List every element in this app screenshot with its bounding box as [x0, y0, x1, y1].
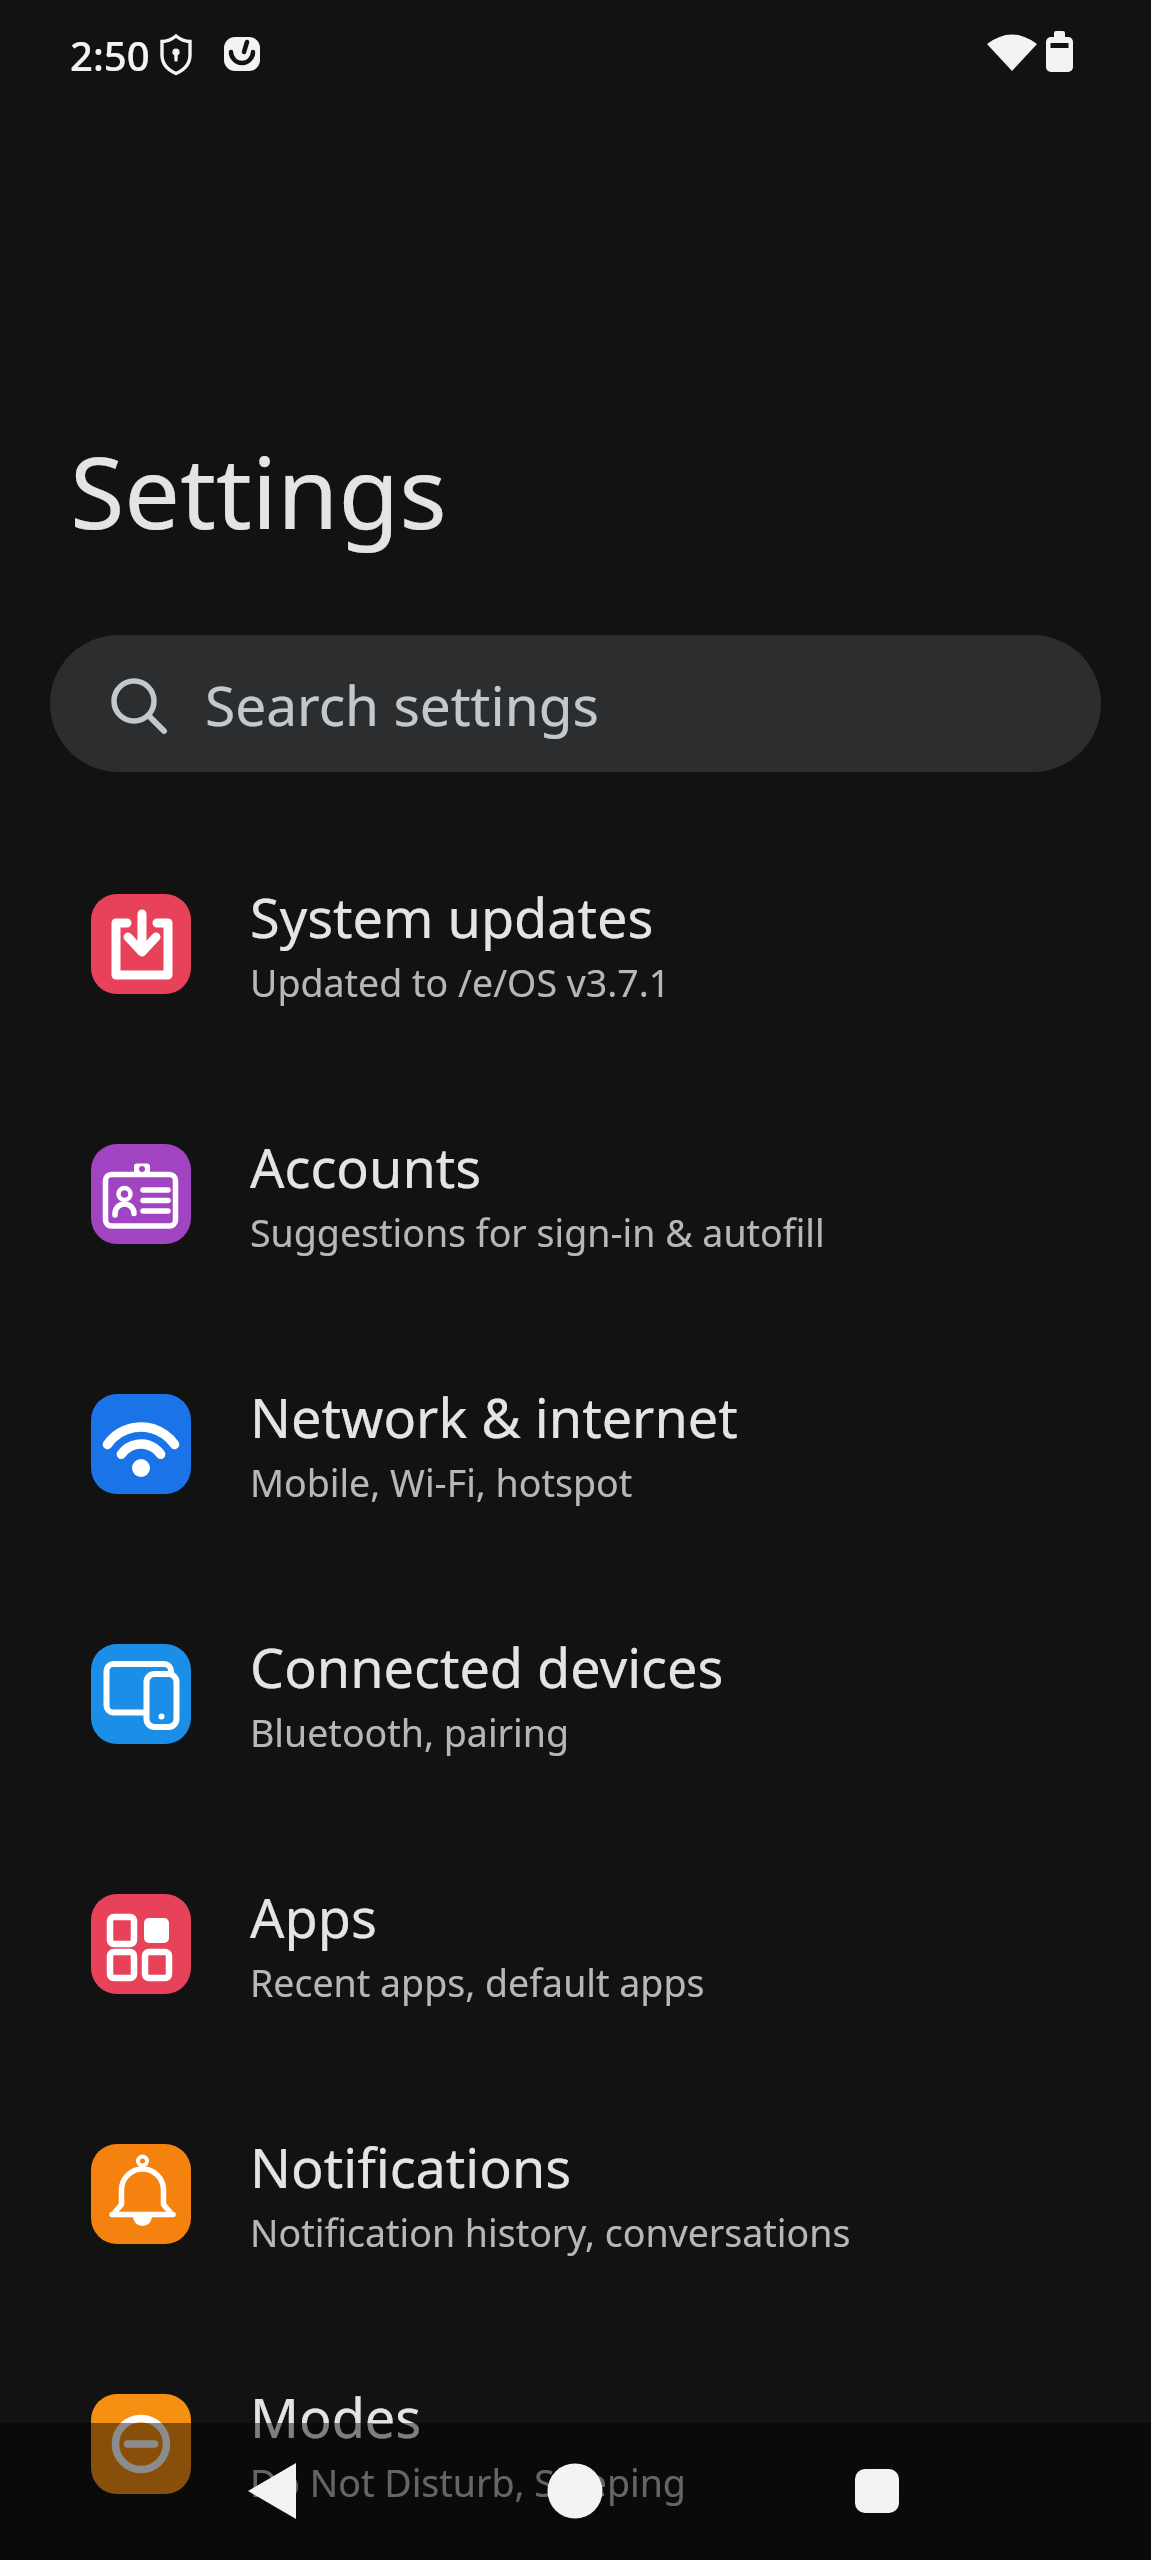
- staticText: Connected devices: [250, 1630, 724, 1704]
- staticText: Notifications: [250, 2130, 572, 2204]
- staticText: Network & internet: [250, 1380, 738, 1454]
- staticText: Mobile, Wi-Fi, hotspot: [250, 1457, 633, 1508]
- button[interactable]: Apps: [0, 1819, 1151, 2069]
- staticText: Modes: [250, 2380, 422, 2454]
- staticText: Suggestions for sign-in & autofill: [250, 1207, 825, 1258]
- staticText: Apps: [250, 1880, 377, 1954]
- button[interactable]: Network & internet: [0, 1319, 1151, 1569]
- button[interactable]: Accounts: [0, 1069, 1151, 1319]
- button[interactable]: Modes: [0, 2319, 1151, 2560]
- button[interactable]: Connected devices: [0, 1569, 1151, 1819]
- button[interactable]: Notifications: [0, 2069, 1151, 2319]
- button[interactable]: [525, 2441, 625, 2541]
- staticText: Settings: [70, 423, 447, 558]
- staticText: Recent apps, default apps: [250, 1957, 705, 2008]
- staticText: Updated to /e/OS v3.7.1: [250, 957, 671, 1008]
- button[interactable]: [827, 2441, 927, 2541]
- staticText: Notification history, conversations: [250, 2207, 851, 2258]
- staticText: Accounts: [250, 1130, 482, 1204]
- staticText: Bluetooth, pairing: [250, 1707, 569, 1758]
- staticText: Search settings: [205, 667, 599, 742]
- staticText: System updates: [250, 880, 654, 954]
- button[interactable]: [222, 2441, 322, 2541]
- staticText: 2:50: [70, 28, 150, 82]
- button[interactable]: Search settings: [50, 635, 1101, 772]
- button[interactable]: System updates: [0, 819, 1151, 1069]
- staticText: Do Not Disturb, Sleeping: [250, 2457, 686, 2508]
